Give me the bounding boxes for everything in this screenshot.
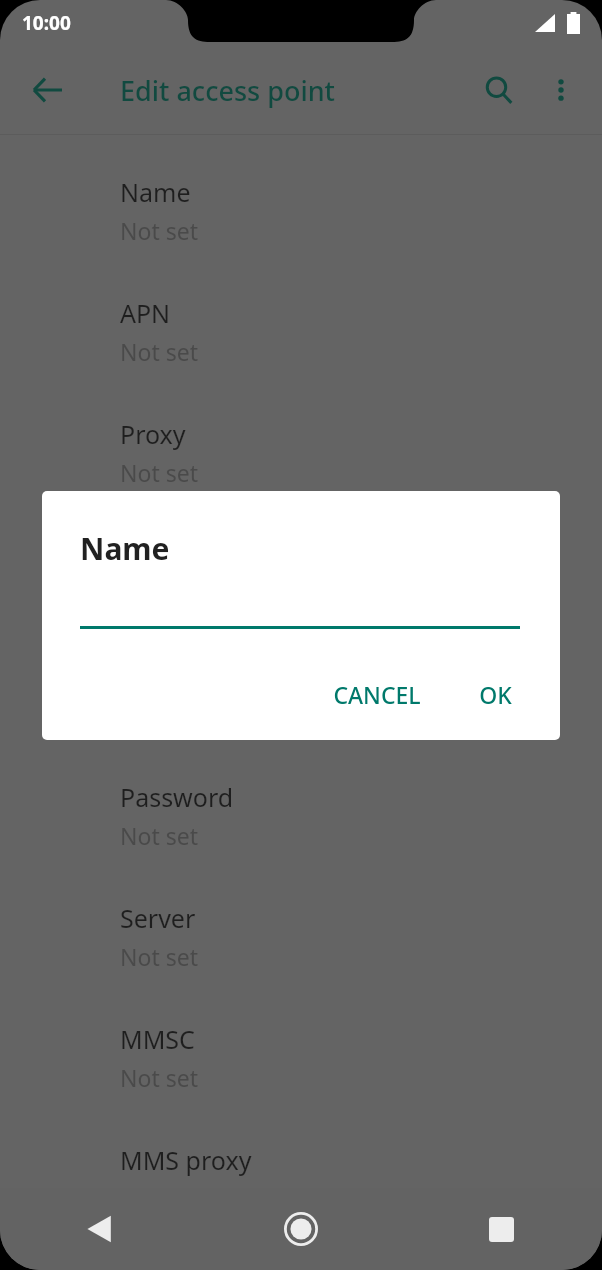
staticText: Password [120,780,234,814]
button[interactable]: Username [0,645,602,766]
button[interactable]: APN [0,282,602,403]
staticText: Name [120,175,191,209]
staticText: Not set [120,820,198,851]
button[interactable]: Back [0,1188,200,1270]
staticText: Not set [120,215,198,246]
staticText: Server [120,901,196,935]
staticText: Port [120,538,170,572]
staticText: MMS proxy [120,1143,252,1177]
button[interactable]: OK [465,667,526,722]
staticText: OK [479,679,512,710]
button[interactable]: More options [530,59,592,121]
staticText: Not set [120,457,198,488]
staticText: CANCEL [333,679,421,710]
staticText: Not set [120,336,198,367]
button[interactable]: Port [0,524,602,645]
button[interactable]: MMS proxy [0,1129,602,1181]
button[interactable]: Name [0,161,602,282]
button[interactable]: Home [200,1188,401,1270]
button[interactable]: Back [18,60,78,120]
staticText: Edit access point [120,72,335,109]
button[interactable]: Server [0,887,602,1008]
button[interactable]: CANCEL [319,667,435,722]
staticText: Not set [120,941,198,972]
staticText: Proxy [120,417,186,451]
button[interactable]: MMSC [0,1008,602,1129]
button[interactable]: Search [468,59,530,121]
staticText: MMSC [120,1022,195,1056]
button[interactable]: Recent apps [401,1188,602,1270]
staticText: 10:00 [22,10,71,36]
button[interactable]: Password [0,766,602,887]
staticText: APN [120,296,171,330]
staticText: Name [80,528,170,569]
button[interactable]: Proxy [0,403,602,524]
staticText: Not set [120,1062,198,1093]
